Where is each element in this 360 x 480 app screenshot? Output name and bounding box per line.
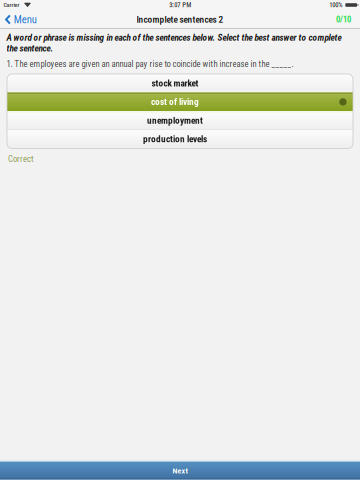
button[interactable]: production levels [7, 130, 353, 148]
staticText: 0/10 [336, 14, 351, 25]
staticText: cost of living [151, 96, 199, 107]
staticText: unemployment [147, 115, 203, 126]
staticText: Carrier [3, 1, 19, 9]
button[interactable]: Next [0, 462, 360, 480]
staticText: Next [172, 466, 187, 475]
button[interactable]: unemployment [7, 111, 353, 130]
staticText: Menu [14, 13, 37, 26]
staticText: 100% [329, 1, 342, 9]
staticText: stock market [151, 78, 198, 89]
button[interactable]: Menu [0, 10, 43, 29]
staticText: production levels [143, 134, 207, 145]
staticText: A word or phrase is missing in each of t… [6, 32, 341, 54]
staticText: 3:07 PM [169, 1, 191, 9]
button[interactable]: stock market [7, 74, 353, 93]
staticText: 1. The employees are given an annual pay… [6, 59, 293, 69]
staticText: Correct [8, 154, 34, 164]
staticText: Incomplete sentences 2 [136, 14, 223, 25]
button[interactable]: cost of living [7, 93, 353, 111]
